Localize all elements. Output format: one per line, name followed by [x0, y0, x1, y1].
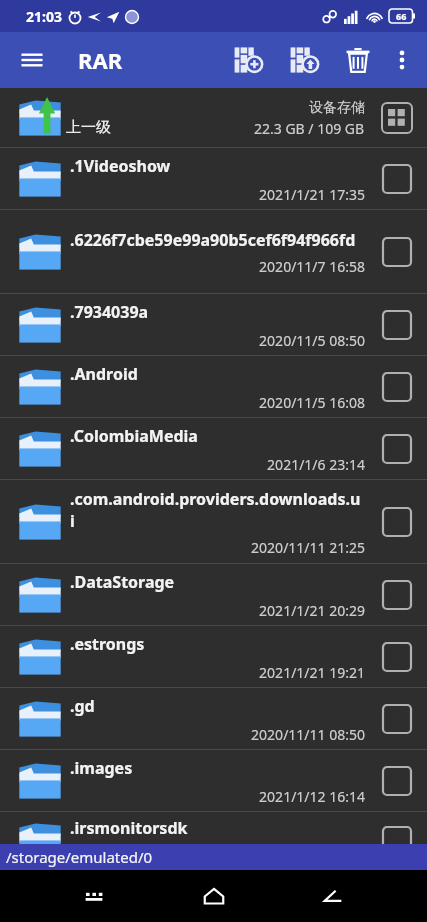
button[interactable]: Select .7934039a — [375, 303, 419, 347]
staticText: 设备存储 — [309, 99, 365, 117]
button[interactable]: .estrongs — [0, 626, 427, 688]
staticText: 2020/11/15 14:03 — [70, 847, 365, 866]
button[interactable]: /storage/emulated/0 — [0, 844, 427, 870]
staticText: .com.android.providers.downloads.ui — [70, 488, 365, 532]
staticText: .ColombiaMedia — [70, 425, 198, 447]
button[interactable]: More options — [381, 39, 423, 81]
staticText: .7934039a — [70, 301, 149, 323]
staticText: .images — [70, 757, 133, 779]
button[interactable]: .DataStorage — [0, 564, 427, 626]
button[interactable]: .images — [0, 750, 427, 812]
button[interactable]: Select .images — [375, 759, 419, 803]
staticText: 2020/11/5 08:50 — [70, 331, 365, 350]
button[interactable]: Select .irsmonitorsdk — [375, 819, 419, 863]
staticText: .estrongs — [70, 633, 145, 655]
button[interactable]: .gd — [0, 688, 427, 750]
staticText: .gd — [70, 695, 95, 717]
staticText: 2021/1/12 16:14 — [70, 787, 365, 806]
button[interactable]: Menu — [10, 38, 54, 82]
button[interactable]: Home — [188, 870, 240, 922]
staticText: 21:03 — [26, 7, 62, 26]
button[interactable]: Select .1Videoshow — [375, 157, 419, 201]
staticText: .irsmonitorsdk — [70, 817, 188, 839]
staticText: .DataStorage — [70, 571, 175, 593]
button[interactable]: 上一级 — [0, 88, 427, 148]
button[interactable]: Add to archive — [225, 36, 273, 84]
button[interactable]: Select .com.android.providers.downloads.… — [375, 500, 419, 544]
staticText: 2020/11/11 08:50 — [70, 725, 365, 744]
button[interactable]: Recents — [68, 870, 120, 922]
button[interactable]: .7934039a — [0, 294, 427, 356]
button[interactable]: Select .Android — [375, 365, 419, 409]
button[interactable]: Select .estrongs — [375, 635, 419, 679]
staticText: 2020/11/5 16:08 — [70, 393, 365, 412]
button[interactable]: Select .6226f7cbe59e99a90b5cef6f94f966fd — [375, 230, 419, 274]
button[interactable]: .com.android.providers.downloads.ui — [0, 480, 427, 564]
staticText: 66 — [396, 10, 407, 22]
button[interactable]: .Android — [0, 356, 427, 418]
staticText: 2021/1/21 17:35 — [70, 185, 365, 204]
staticText: 上一级 — [66, 118, 111, 137]
button[interactable]: Delete — [335, 37, 381, 83]
staticText: RAR — [78, 45, 123, 75]
button[interactable]: Select .gd — [375, 697, 419, 741]
button[interactable]: Grid view — [375, 96, 419, 140]
button[interactable]: Back — [307, 870, 359, 922]
button[interactable]: .6226f7cbe59e99a90b5cef6f94f966fd — [0, 210, 427, 294]
button[interactable]: Extract archive — [281, 36, 329, 84]
button[interactable]: .ColombiaMedia — [0, 418, 427, 480]
staticText: 2021/1/6 23:14 — [70, 455, 365, 474]
staticText: 2020/11/11 21:25 — [70, 538, 365, 557]
staticText: 2020/11/7 16:58 — [70, 257, 365, 276]
staticText: .6226f7cbe59e99a90b5cef6f94f966fd — [70, 229, 356, 251]
button[interactable]: .irsmonitorsdk — [0, 812, 427, 870]
staticText: .Android — [70, 363, 138, 385]
staticText: .1Videoshow — [70, 155, 171, 177]
staticText: 22.3 GB / 109 GB — [254, 119, 365, 138]
staticText: 2021/1/21 20:29 — [70, 601, 365, 620]
button[interactable]: Select .DataStorage — [375, 573, 419, 617]
button[interactable]: .1Videoshow — [0, 148, 427, 210]
staticText: /storage/emulated/0 — [6, 847, 153, 867]
staticText: 2021/1/21 19:21 — [70, 663, 365, 682]
button[interactable]: Select .ColombiaMedia — [375, 427, 419, 471]
